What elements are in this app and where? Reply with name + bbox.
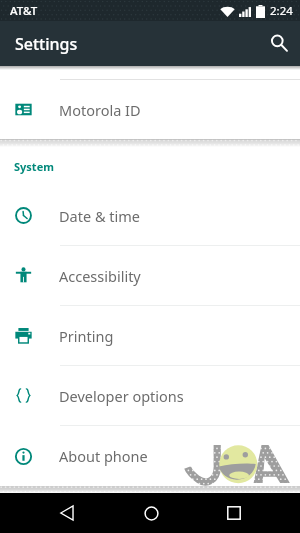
staticText: Developer options xyxy=(59,386,184,406)
staticText: Printing xyxy=(59,326,114,346)
staticText: Settings xyxy=(15,33,78,55)
staticText: About phone xyxy=(59,446,148,466)
button[interactable]: Motorola ID xyxy=(0,80,300,139)
button[interactable]: Developer options xyxy=(0,366,300,425)
button[interactable]: Recents xyxy=(214,493,254,533)
button[interactable]: About phone xyxy=(0,426,300,486)
button[interactable]: Search xyxy=(255,21,300,66)
staticText: AT&T xyxy=(10,3,38,19)
staticText: Accessibility xyxy=(59,266,141,286)
button[interactable]: Accessibility xyxy=(0,246,300,305)
button[interactable]: Home xyxy=(131,493,171,533)
staticText: 2:24 xyxy=(270,3,293,19)
staticText: Motorola ID xyxy=(59,100,141,120)
button[interactable]: Back xyxy=(47,493,87,533)
staticText: System xyxy=(14,159,54,174)
button[interactable]: Printing xyxy=(0,306,300,365)
button[interactable]: Date & time xyxy=(0,186,300,245)
staticText: Date & time xyxy=(59,206,140,226)
